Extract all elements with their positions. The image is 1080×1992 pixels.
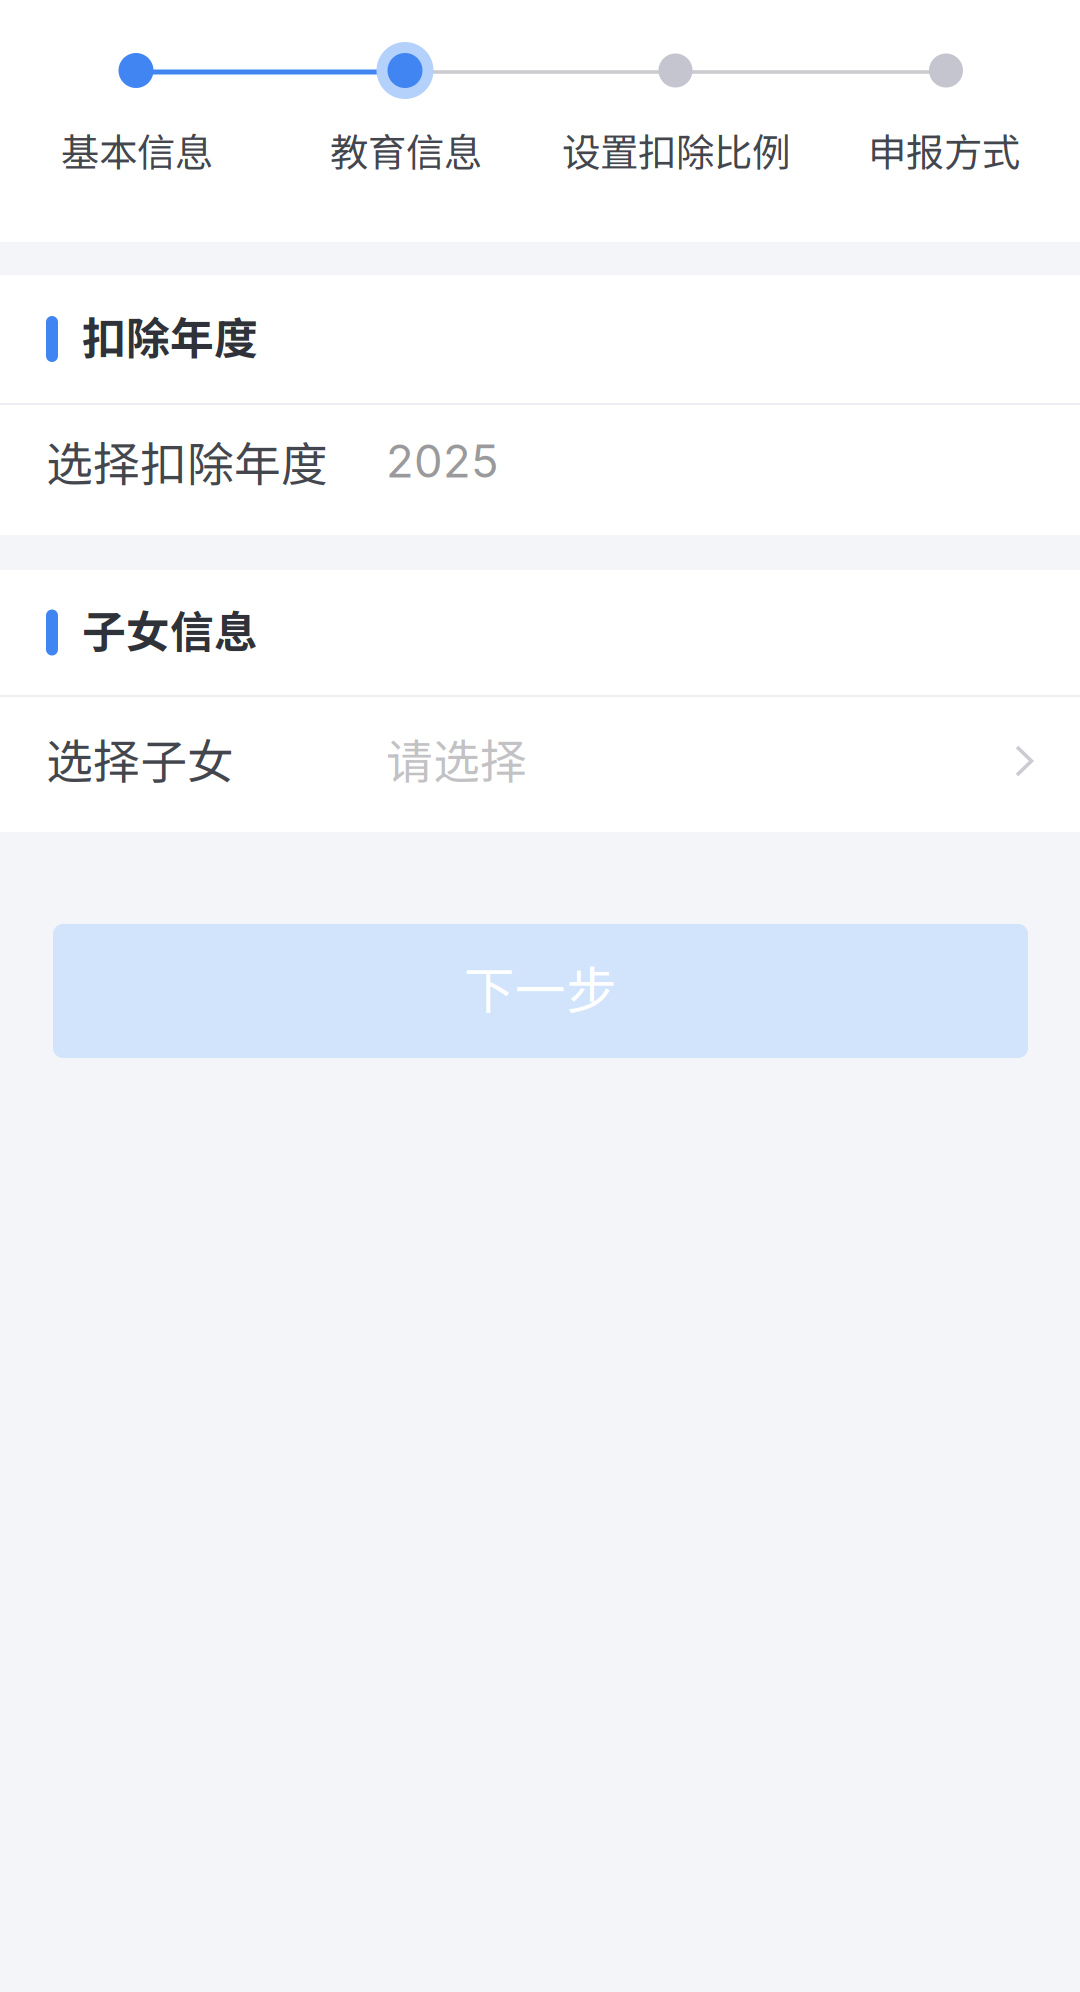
button[interactable]: 基本信息 (0, 122, 270, 178)
staticText: 申报方式 (868, 122, 1020, 178)
button[interactable]: 申报方式 (810, 122, 1080, 178)
button[interactable]: 教育信息 (270, 122, 540, 178)
staticText: 设置扣除比例 (562, 122, 790, 178)
staticText: 扣除年度 (82, 304, 258, 367)
button[interactable]: 选择子女 (0, 697, 1080, 832)
staticText: 2025 (386, 434, 499, 488)
staticText: 下一步 (464, 950, 617, 1024)
button[interactable]: 选择扣除年度 (0, 405, 1080, 535)
staticText: 教育信息 (330, 122, 482, 178)
staticText: 请选择 (386, 725, 527, 792)
staticText: 子女信息 (82, 597, 258, 661)
button[interactable]: 下一步 (53, 924, 1028, 1058)
button[interactable]: 设置扣除比例 (540, 122, 810, 178)
staticText: 基本信息 (61, 122, 213, 178)
staticText: 选择扣除年度 (46, 427, 328, 495)
staticText: 选择子女 (46, 725, 234, 792)
